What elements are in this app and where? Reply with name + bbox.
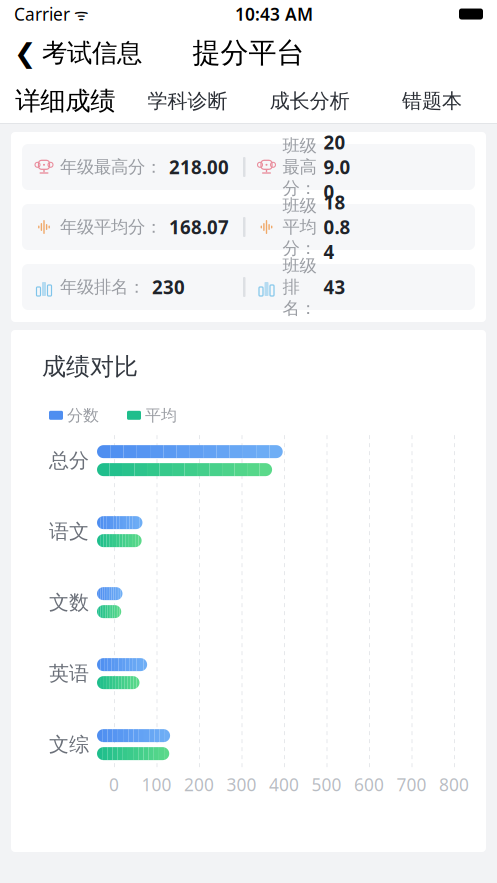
staticText: 学科诊断 [147,89,227,113]
staticText: 400 [269,773,299,796]
staticText: Carrier [14,2,70,25]
staticText: 43 [323,275,345,299]
staticText: 500 [311,773,341,796]
staticText: 218.00 [169,155,229,179]
staticText: 209.00 [323,130,350,204]
staticText: ❮ [14,38,36,68]
staticText: 考试信息 [42,37,142,68]
button[interactable]: ❮ [0,31,156,74]
staticText: 错题本 [402,89,462,113]
button[interactable]: 详细成绩 [4,78,126,124]
staticText: 700 [396,773,426,796]
staticText: 分数 [67,405,99,425]
staticText: 语文 [49,519,89,544]
staticText: 600 [354,773,384,796]
staticText: 文综 [49,732,89,757]
staticText: 800 [439,773,469,796]
staticText: 300 [226,773,256,796]
staticText: 0 [109,773,119,796]
staticText: 英语 [49,661,89,686]
staticText: 180.84 [323,190,350,264]
staticText: 年级最高分： [60,156,162,178]
staticText: 年级排名： [60,276,145,298]
button[interactable]: 错题本 [371,78,493,124]
staticText: 详细成绩 [15,85,115,116]
staticText: 成长分析 [270,89,350,113]
staticText: 100 [141,773,171,796]
staticText: 总分 [49,448,89,473]
staticText: 230 [152,275,185,299]
staticText: ᯤ [70,3,89,25]
staticText: 文数 [49,590,89,615]
button[interactable]: 成长分析 [248,78,371,124]
staticText: 10:43 AM [235,2,313,25]
staticText: 200 [184,773,214,796]
staticText: 班级排名： [282,255,316,319]
staticText: 班级平均分： [282,195,316,259]
staticText: 成绩对比 [42,352,138,381]
staticText: 班级最高分： [282,135,316,199]
staticText: 提分平台 [192,36,304,70]
staticText: 平均 [145,405,177,425]
button[interactable]: 学科诊断 [126,78,248,124]
staticText: 168.07 [169,215,229,239]
staticText: 年级平均分： [60,216,162,238]
